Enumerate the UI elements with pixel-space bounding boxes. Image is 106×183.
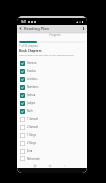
button[interactable]: Home <box>47 163 52 168</box>
staticText: Joshua <box>27 93 36 97</box>
staticText: Nehemiah <box>27 157 40 161</box>
staticText: Judges <box>27 101 36 105</box>
staticText: Leviticus <box>27 77 38 81</box>
staticText: Select chapters you have read to track r… <box>19 54 74 57</box>
staticText: Book Chapters <box>19 49 42 53</box>
staticText: 1 Samuel <box>27 117 39 121</box>
button[interactable]: Ezra <box>17 147 87 155</box>
staticText: 7 of 26 chapters <box>19 44 39 48</box>
button[interactable]: 1 Samuel <box>17 115 87 123</box>
button[interactable]: 2 Samuel <box>17 123 87 131</box>
button[interactable]: More options <box>80 25 87 32</box>
button[interactable]: Leviticus <box>17 75 87 83</box>
staticText: Ruth <box>27 109 33 113</box>
staticText: Genesis <box>27 61 37 65</box>
button[interactable]: Back <box>62 163 67 168</box>
button[interactable]: Exodus <box>17 67 87 75</box>
staticText: Ezra <box>27 149 33 153</box>
staticText: 2 Kings <box>27 141 36 145</box>
staticText: 2 Samuel <box>27 125 39 129</box>
button[interactable]: 2 Kings <box>17 139 87 147</box>
staticText: 9:41 <box>21 20 27 24</box>
staticText: Numbers <box>27 85 39 89</box>
button[interactable]: Recents <box>32 163 37 168</box>
button[interactable]: Joshua <box>17 91 87 99</box>
button[interactable]: Judges <box>17 99 87 107</box>
staticText: Reading Plan <box>24 26 50 31</box>
staticText: 1 Kings <box>27 133 36 137</box>
staticText: Exodus <box>27 69 36 73</box>
staticText: Progress <box>22 33 87 37</box>
button[interactable]: Nehemiah <box>17 155 87 162</box>
button[interactable]: 1 Kings <box>17 131 87 139</box>
button[interactable]: Numbers <box>17 83 87 91</box>
button[interactable]: Genesis <box>17 59 87 67</box>
button[interactable]: Back <box>17 25 24 32</box>
button[interactable]: Ruth <box>17 107 87 115</box>
